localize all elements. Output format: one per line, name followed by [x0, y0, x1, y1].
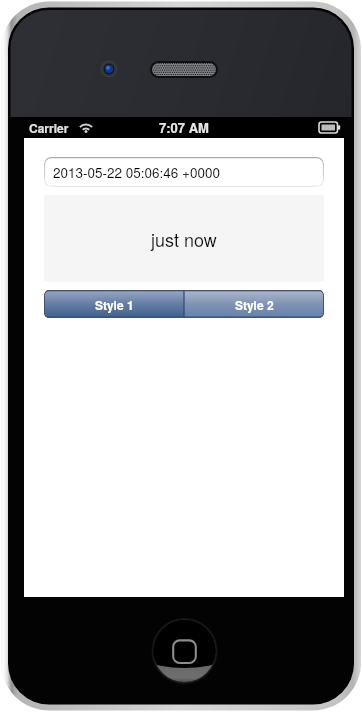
staticText: Style 1	[95, 296, 134, 313]
button[interactable]: 2013-05-22 05:06:46 +0000	[44, 157, 324, 187]
staticText: 7:07 AM	[159, 118, 209, 137]
button[interactable]: Style 1	[44, 290, 184, 318]
other: Wi-Fi	[78, 122, 94, 133]
staticText: Carrier	[29, 119, 69, 136]
staticText: Style 2	[235, 296, 274, 313]
button[interactable]: Style 2	[184, 290, 324, 318]
staticText: just now	[151, 226, 217, 252]
staticText: 2013-05-22 05:06:46 +0000	[53, 163, 220, 182]
other: Home	[0, 0, 362, 712]
